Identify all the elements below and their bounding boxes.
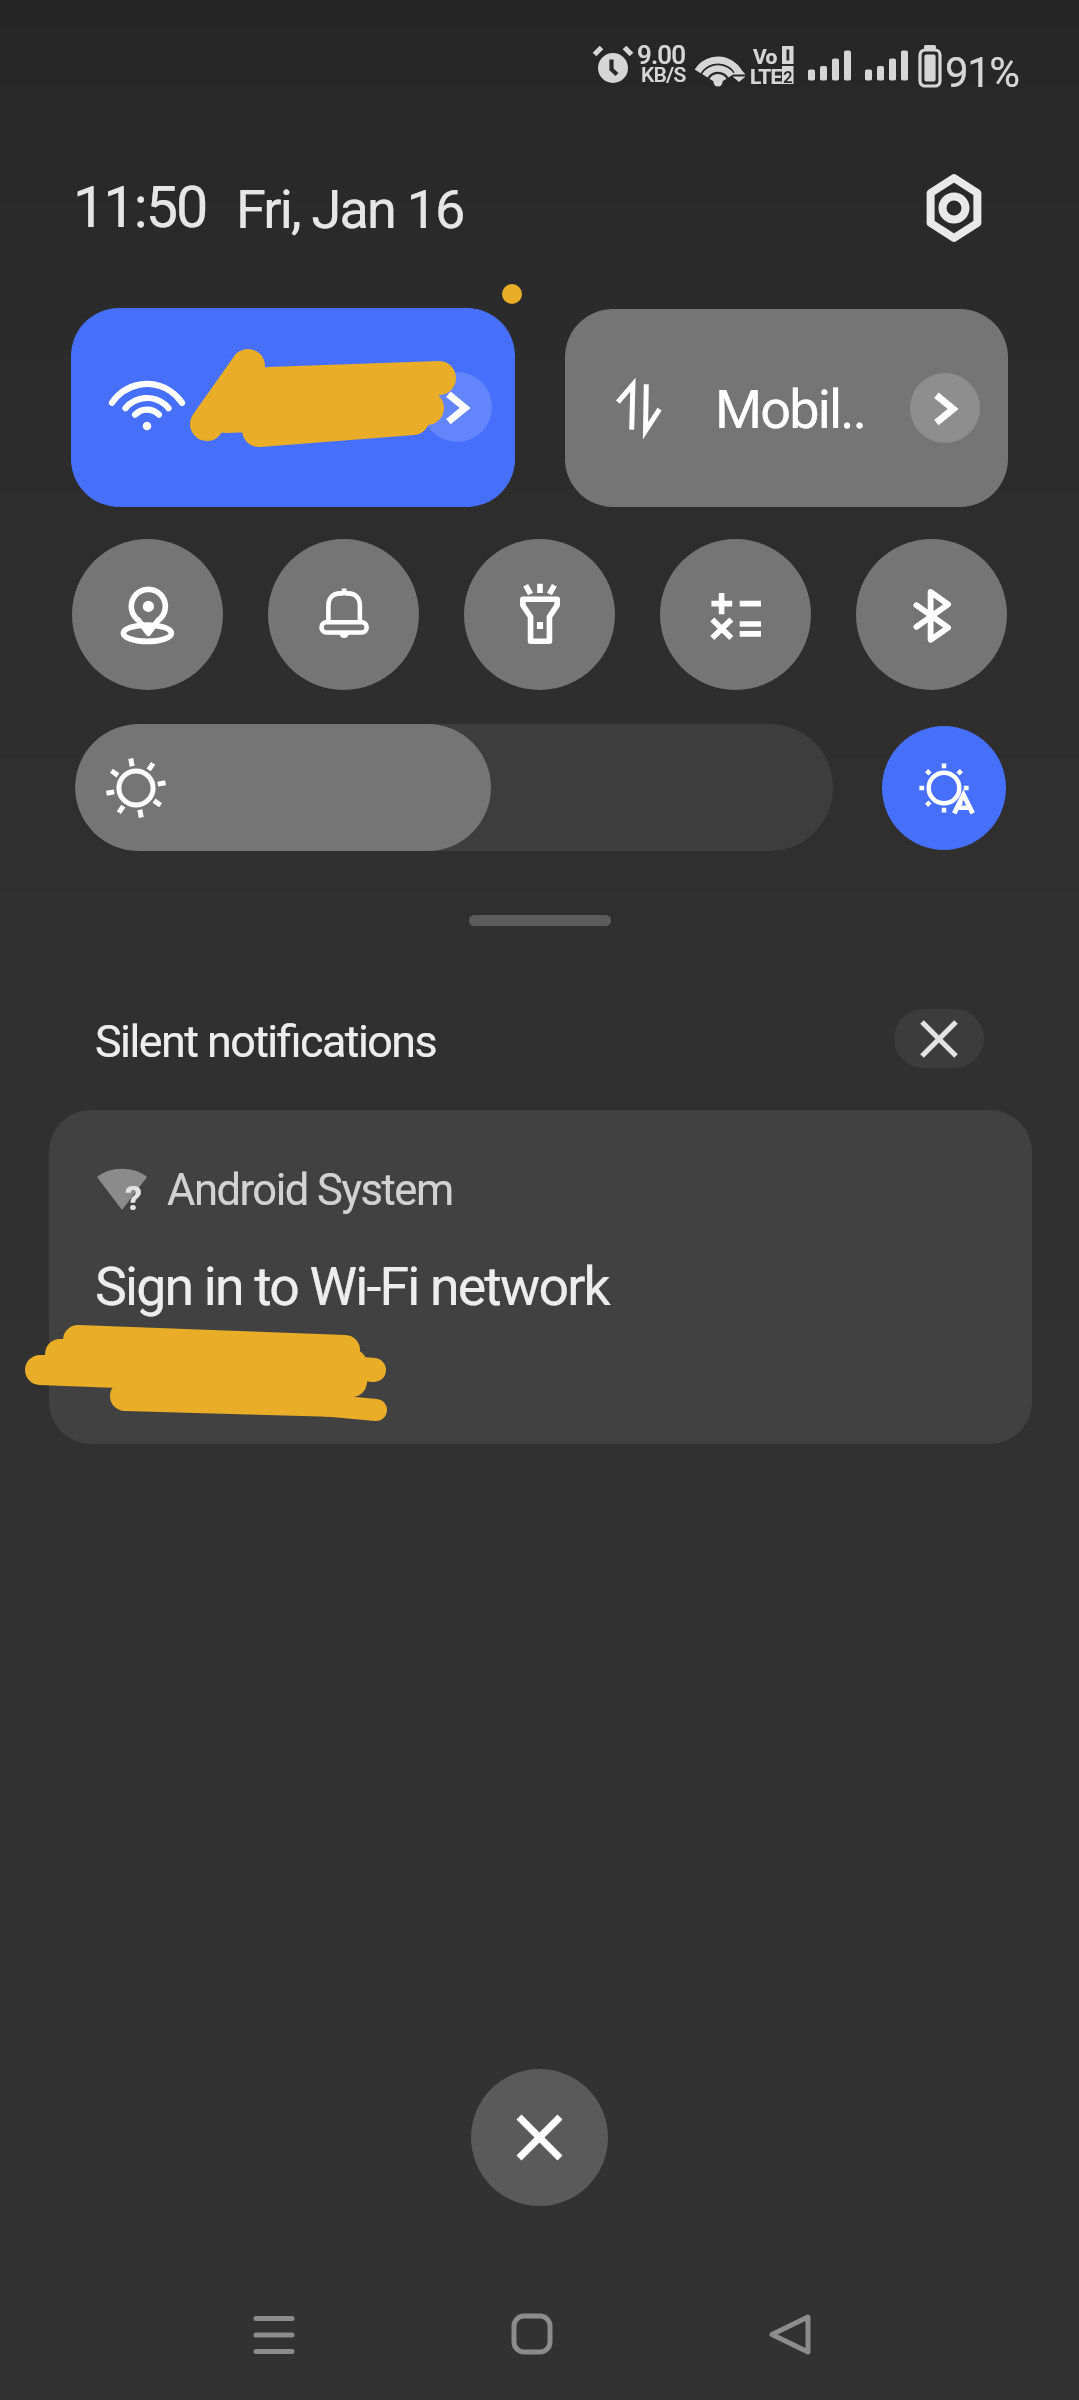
staticText: 91% xyxy=(945,48,1019,97)
staticText: Vo xyxy=(753,45,777,70)
button[interactable]: Calculator xyxy=(660,539,811,690)
staticText: Mobil.. xyxy=(715,378,866,441)
staticText: Fri, Jan 16 xyxy=(236,178,464,241)
staticText: LTE xyxy=(750,65,782,90)
button[interactable]: Mobile data xyxy=(565,309,1008,507)
button[interactable]: Back xyxy=(730,2294,850,2374)
staticText: 2 xyxy=(783,67,793,87)
button[interactable]: Close notification shade xyxy=(471,2069,608,2206)
button[interactable]: Auto brightness xyxy=(882,726,1006,850)
button[interactable]: Settings xyxy=(906,160,1001,255)
button[interactable]: Silent mode xyxy=(268,539,419,690)
button[interactable]: Recent apps xyxy=(214,2294,334,2374)
button[interactable]: ? xyxy=(49,1110,1032,1444)
button[interactable]: Brightness xyxy=(75,724,833,851)
staticText: Silent notifications xyxy=(95,1015,437,1068)
staticText: ? xyxy=(125,1178,141,1218)
staticText: KB/S xyxy=(641,63,686,88)
button[interactable]: Bluetooth xyxy=(856,539,1007,690)
button[interactable]: Home xyxy=(472,2294,592,2374)
staticText: 11:50 xyxy=(73,174,207,241)
button[interactable]: Clear all silent notifications xyxy=(894,1009,984,1068)
button[interactable]: Wi-Fi xyxy=(71,308,515,507)
button[interactable]: Flashlight xyxy=(464,539,615,690)
button[interactable]: Location xyxy=(72,539,223,690)
staticText: Android System xyxy=(167,1165,453,1216)
staticText: 9.00 xyxy=(637,40,686,70)
staticText: Sign in to Wi-Fi network xyxy=(95,1255,609,1318)
